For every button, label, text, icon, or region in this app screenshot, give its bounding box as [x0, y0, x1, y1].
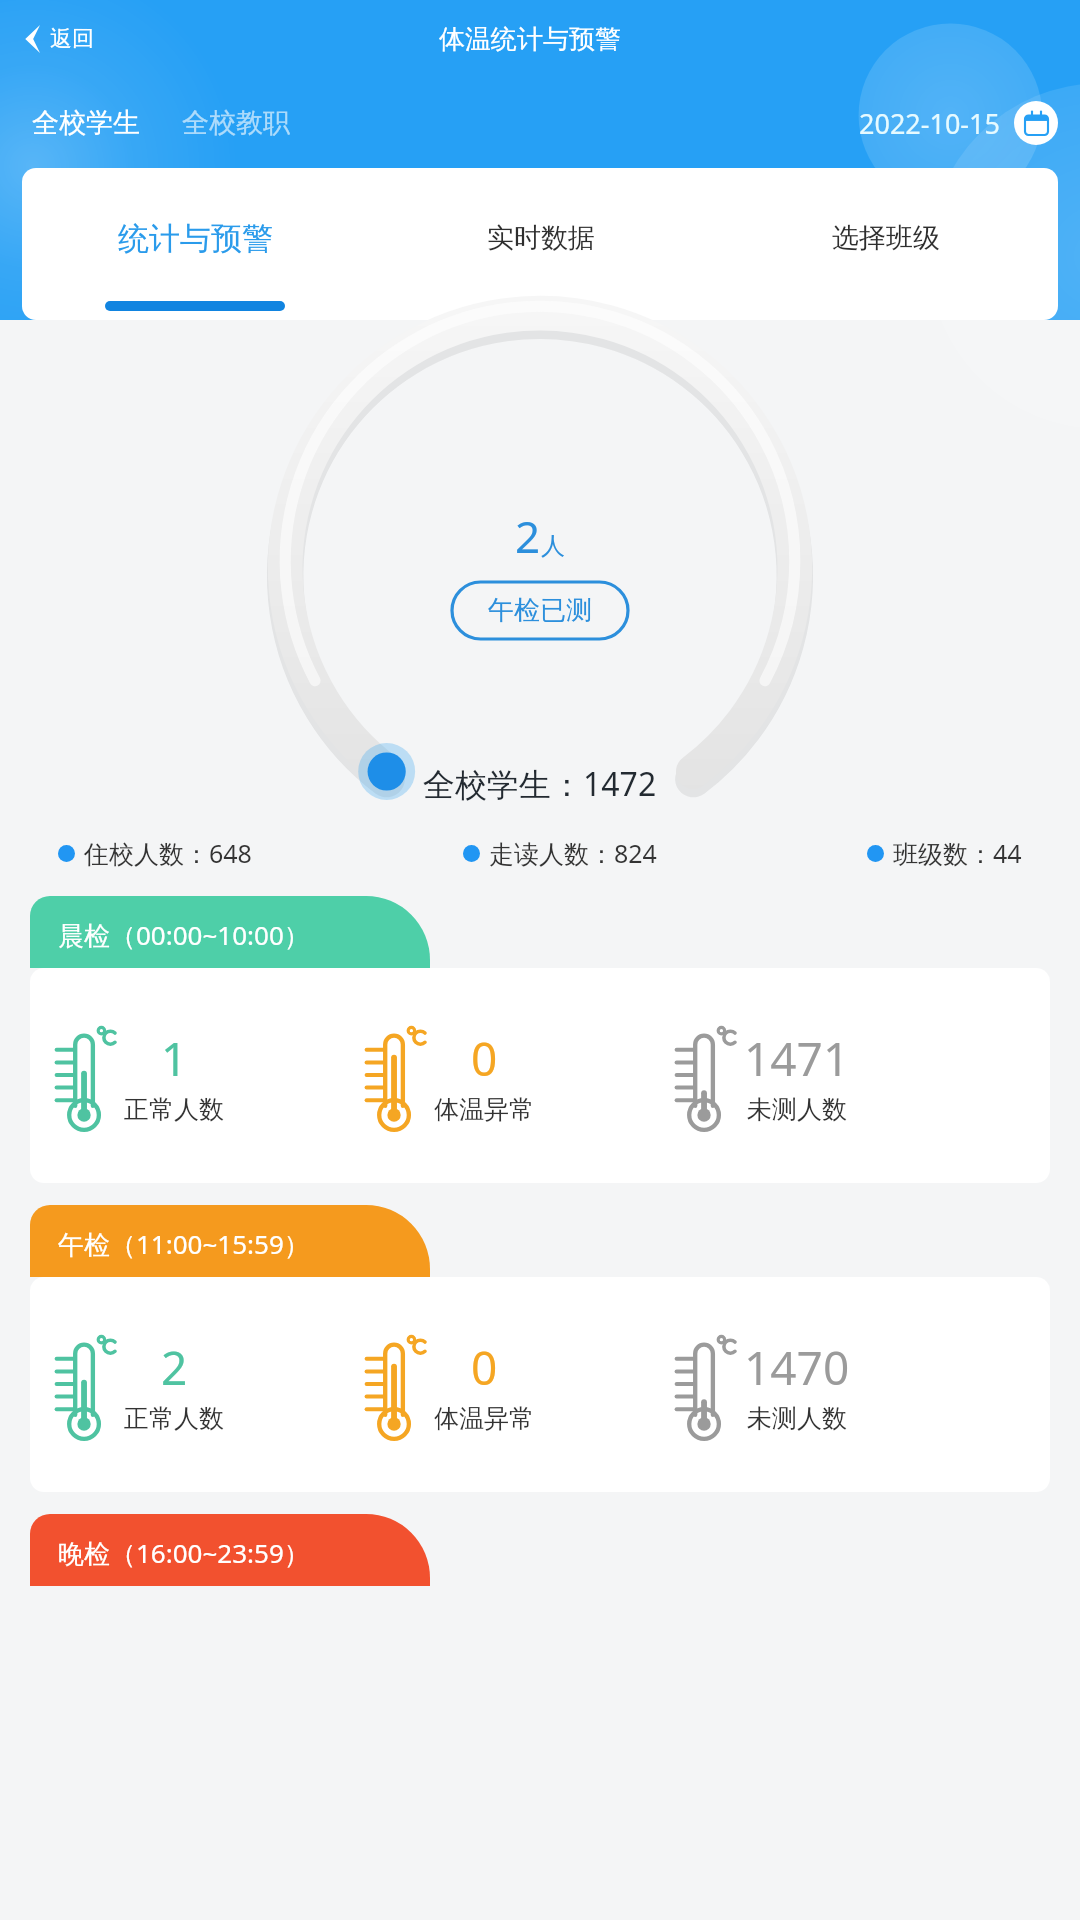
button[interactable]: 选择班级 — [713, 168, 1058, 320]
button[interactable]: 统计与预警 — [22, 168, 368, 320]
staticText: 1 — [161, 1027, 188, 1090]
button[interactable]: 午检（11:00~15:59） — [30, 1205, 430, 1277]
button[interactable]: 晨检（00:00~10:00） — [30, 896, 430, 968]
staticText: 走读人数：824 — [489, 836, 657, 870]
staticText: 正常人数 — [124, 1094, 224, 1125]
staticText: 2022-10-15 — [859, 105, 1000, 142]
button[interactable]: 1 — [30, 968, 1050, 1183]
staticText: 午检已测 — [488, 594, 592, 627]
staticText: 返回 — [50, 25, 94, 53]
staticText: 0 — [471, 1027, 498, 1090]
staticText: 体温异常 — [434, 1403, 534, 1434]
staticText: 体温异常 — [434, 1094, 534, 1125]
other: Pick date — [1014, 101, 1058, 145]
button[interactable]: 午检已测 — [452, 582, 628, 639]
staticText: 1470 — [744, 1336, 850, 1399]
staticText: 住校人数：648 — [84, 836, 252, 870]
staticText: 选择班级 — [832, 221, 940, 255]
staticText: 晚检（16:00~23:59） — [58, 1535, 310, 1571]
button[interactable]: 实时数据 — [368, 168, 713, 320]
staticText: 0 — [471, 1336, 498, 1399]
staticText: 实时数据 — [487, 221, 595, 255]
button[interactable]: 2022-10-15 — [859, 96, 1058, 150]
staticText: 2 — [161, 1336, 188, 1399]
staticText: 班级数：44 — [893, 836, 1022, 870]
button[interactable]: 全校教职 — [172, 98, 300, 148]
button[interactable]: 2 — [30, 1277, 1050, 1492]
staticText: 统计与预警 — [118, 219, 273, 258]
button[interactable]: 晚检（16:00~23:59） — [30, 1514, 430, 1586]
staticText: 午检（11:00~15:59） — [58, 1226, 310, 1262]
staticText: 未测人数 — [747, 1403, 847, 1434]
button[interactable]: 全校学生 — [22, 98, 150, 148]
staticText: 全校学生：1472 — [423, 762, 657, 806]
staticText: 正常人数 — [124, 1403, 224, 1434]
staticText: 体温统计与预警 — [439, 23, 621, 56]
button[interactable]: 返回 — [0, 17, 112, 61]
staticText: 1471 — [744, 1027, 850, 1090]
staticText: 人 — [541, 531, 565, 561]
staticText: 未测人数 — [747, 1094, 847, 1125]
staticText: 2 — [515, 506, 541, 566]
staticText: 晨检（00:00~10:00） — [58, 917, 310, 953]
